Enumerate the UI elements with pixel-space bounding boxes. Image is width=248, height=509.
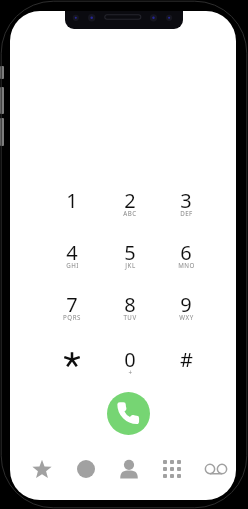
staticText: 2 — [124, 187, 136, 214]
staticText: 1 — [66, 187, 78, 214]
button[interactable]: Pound — [158, 333, 214, 385]
staticText: 4 — [66, 239, 78, 266]
button[interactable]: Five JKL — [102, 226, 158, 278]
staticText: PQRS — [63, 313, 81, 321]
button[interactable]: Favourites — [20, 448, 64, 490]
staticText: 9 — [180, 291, 192, 318]
staticText: DEF — [180, 209, 193, 217]
staticText: 5 — [124, 239, 136, 266]
button[interactable]: Four GHI — [44, 226, 100, 278]
button[interactable]: Two ABC — [102, 174, 158, 226]
staticText: 7 — [66, 291, 78, 318]
staticText: 0 — [124, 346, 136, 373]
button[interactable]: Call — [107, 392, 150, 435]
button[interactable]: Voicemail — [194, 448, 236, 490]
button[interactable]: One — [44, 174, 100, 226]
staticText: 8 — [124, 291, 136, 318]
staticText: ABC — [123, 209, 137, 217]
button[interactable]: Six MNO — [158, 226, 214, 278]
staticText: + — [128, 368, 133, 376]
button[interactable]: Three DEF — [158, 174, 214, 226]
button[interactable]: Eight TUV — [102, 278, 158, 330]
button[interactable]: Contacts — [107, 448, 151, 490]
staticText: # — [180, 346, 193, 373]
button[interactable]: Seven PQRS — [44, 278, 100, 330]
staticText: WXY — [179, 313, 194, 321]
button[interactable]: Recents — [64, 448, 108, 490]
staticText: TUV — [123, 313, 137, 321]
staticText: 6 — [180, 239, 192, 266]
staticText: MNO — [178, 261, 195, 269]
button[interactable]: Keypad — [150, 448, 194, 490]
button[interactable]: Zero plus — [102, 333, 158, 385]
staticText: GHI — [66, 261, 79, 269]
staticText: JKL — [125, 261, 136, 269]
button[interactable]: Star — [44, 333, 100, 385]
staticText: 3 — [180, 187, 192, 214]
button[interactable]: Nine WXY — [158, 278, 214, 330]
